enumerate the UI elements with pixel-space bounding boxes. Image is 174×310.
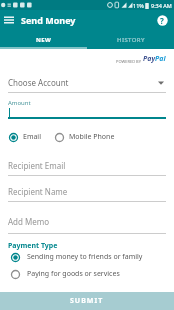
button[interactable]: SUBMIT (0, 292, 174, 310)
staticText: Payment Type (8, 241, 58, 251)
button[interactable]: ? (152, 10, 172, 30)
button[interactable]: Add Memo (8, 216, 166, 234)
staticText: POWERED BY (116, 59, 143, 64)
staticText: NEW (36, 36, 52, 44)
staticText: Recipient Email (8, 160, 66, 171)
staticText: 9:34 AM (151, 2, 172, 9)
staticText: 11% (133, 2, 144, 9)
button[interactable]: Paying for goods or services (11, 268, 120, 280)
button[interactable]: Mobile Phone (55, 132, 115, 142)
staticText: HISTORY (117, 36, 145, 44)
button[interactable]: Recipient Email (8, 160, 166, 176)
button[interactable]: Recipient Name (8, 186, 166, 202)
staticText: Paying for goods or services (27, 269, 120, 279)
staticText: SUBMIT (70, 296, 104, 306)
staticText: Recipient Name (8, 186, 68, 197)
button[interactable]: HISTORY (87, 30, 174, 49)
button[interactable]: NEW (0, 30, 87, 49)
button[interactable]: Email (9, 132, 41, 142)
staticText: PayPal (143, 54, 166, 64)
staticText: Mobile Phone (69, 132, 115, 142)
staticText: ? (160, 15, 164, 26)
staticText: Add Memo (8, 216, 50, 227)
staticText: Email (23, 132, 41, 142)
staticText: Sending money to friends or family (27, 252, 143, 262)
button[interactable]: Amount (8, 96, 166, 119)
button[interactable]: Sending money to friends or family (11, 251, 143, 263)
staticText: Amount (8, 99, 31, 107)
button[interactable] (0, 10, 18, 30)
button[interactable]: Choose Account (8, 72, 166, 93)
staticText: Send Money (21, 14, 76, 26)
staticText: Choose Account (8, 77, 69, 88)
